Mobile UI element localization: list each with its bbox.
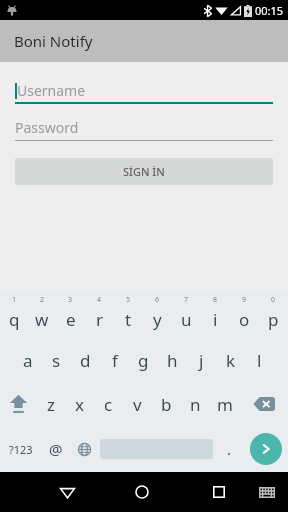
staticText: p [268, 308, 279, 331]
button[interactable]: . [215, 426, 243, 472]
button[interactable]: g [129, 338, 158, 382]
button[interactable]: Home [125, 475, 159, 509]
button[interactable]: v [123, 382, 152, 426]
button[interactable]: Backspace [239, 382, 288, 426]
staticText: 4 [97, 295, 102, 305]
button[interactable]: 9 [230, 292, 259, 338]
button[interactable]: h [158, 338, 187, 382]
staticText: Username [17, 81, 86, 100]
button[interactable]: Change language [70, 426, 98, 472]
staticText: q [9, 308, 20, 331]
staticText: SİGN İN [123, 164, 165, 179]
button[interactable]: k [216, 338, 245, 382]
staticText: @ [49, 439, 63, 459]
staticText: r [96, 308, 104, 331]
button[interactable]: a [13, 338, 42, 382]
staticText: 8 [213, 295, 218, 305]
staticText: d [80, 349, 91, 372]
button[interactable]: SİGN İN [15, 158, 273, 185]
staticText: Password [15, 118, 79, 137]
button[interactable]: Enter [250, 433, 282, 465]
staticText: y [153, 308, 162, 331]
button[interactable]: z [36, 382, 65, 426]
staticText: j [199, 349, 204, 372]
staticText: 7 [184, 295, 189, 305]
button[interactable]: Keyboard [252, 477, 282, 507]
staticText: 3 [68, 295, 73, 305]
button[interactable]: 4 [85, 292, 114, 338]
staticText: z [47, 393, 55, 416]
button[interactable]: Username [15, 77, 273, 104]
button[interactable]: x [65, 382, 94, 426]
staticText: 0 [271, 295, 276, 305]
staticText: x [75, 393, 84, 416]
button[interactable]: 1 [0, 292, 28, 338]
button[interactable]: c [94, 382, 123, 426]
button[interactable]: @ [42, 426, 70, 472]
staticText: 2 [40, 295, 45, 305]
staticText: s [52, 349, 61, 372]
button[interactable]: m [210, 382, 239, 426]
staticText: g [138, 349, 149, 372]
staticText: o [239, 308, 250, 331]
staticText: w [35, 308, 49, 331]
staticText: i [213, 308, 218, 331]
staticText: t [125, 308, 132, 331]
button[interactable]: l [245, 338, 274, 382]
button[interactable]: Shift [0, 382, 36, 426]
button[interactable]: f [100, 338, 129, 382]
button[interactable]: b [152, 382, 181, 426]
staticText: n [190, 393, 201, 416]
button[interactable]: 5 [114, 292, 143, 338]
staticText: 5 [126, 295, 131, 305]
button[interactable]: 3 [56, 292, 85, 338]
button[interactable]: 2 [28, 292, 56, 338]
staticText: ?123 [9, 442, 33, 457]
staticText: f [112, 349, 118, 372]
staticText: 00:15 [255, 3, 284, 18]
staticText: b [161, 393, 172, 416]
button[interactable]: ?123 [0, 426, 42, 472]
staticText: h [167, 349, 178, 372]
staticText: e [66, 308, 76, 331]
button[interactable]: Recent apps [202, 475, 236, 509]
staticText: l [257, 349, 262, 372]
button[interactable]: s [42, 338, 71, 382]
button[interactable]: 7 [172, 292, 201, 338]
button[interactable]: 0 [259, 292, 288, 338]
staticText: . [227, 439, 232, 459]
staticText: a [23, 349, 33, 372]
staticText: v [133, 393, 142, 416]
button[interactable]: n [181, 382, 210, 426]
staticText: k [226, 349, 236, 372]
staticText: Boni Notify [14, 31, 93, 51]
staticText: 9 [242, 295, 247, 305]
staticText: 6 [155, 295, 160, 305]
button[interactable]: j [187, 338, 216, 382]
staticText: c [104, 393, 113, 416]
button[interactable]: 6 [143, 292, 172, 338]
button[interactable]: 8 [201, 292, 230, 338]
staticText: 1 [12, 295, 17, 305]
staticText: m [217, 393, 233, 416]
staticText: u [181, 308, 192, 331]
button[interactable]: Password [15, 114, 273, 141]
button[interactable]: Back [50, 475, 84, 509]
button[interactable]: d [71, 338, 100, 382]
